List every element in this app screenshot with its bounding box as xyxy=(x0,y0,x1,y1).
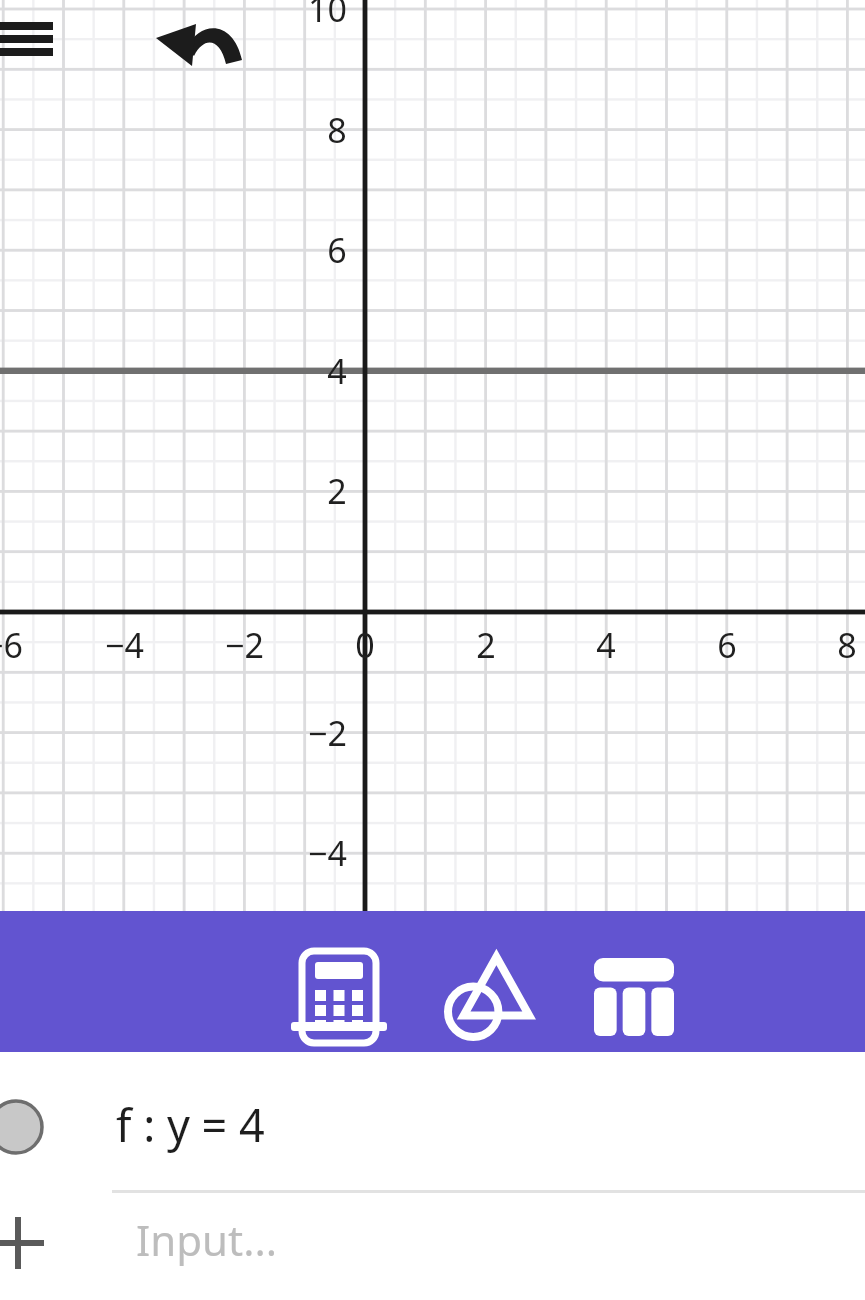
button[interactable]: Table xyxy=(554,911,700,1052)
staticText: Input... xyxy=(136,1211,277,1268)
staticText: −2 xyxy=(308,710,347,756)
staticText: f : y = 4 xyxy=(116,1094,265,1155)
button[interactable]: Tools xyxy=(408,911,554,1052)
staticText: 4 xyxy=(596,622,616,668)
staticText: −4 xyxy=(105,622,144,668)
staticText: 6 xyxy=(327,227,347,273)
staticText: 10 xyxy=(308,0,347,32)
staticText: 4 xyxy=(327,348,347,394)
button[interactable]: Undo xyxy=(150,4,246,74)
staticText: 2 xyxy=(476,622,496,668)
staticText: −4 xyxy=(308,830,347,876)
staticText: 0 xyxy=(355,622,375,668)
staticText: 2 xyxy=(327,468,347,514)
button[interactable]: Calculator xyxy=(266,911,412,1052)
staticText: 8 xyxy=(837,622,857,668)
button[interactable]: f : y = 4 xyxy=(0,1052,865,1187)
button[interactable]: Input... xyxy=(0,1193,865,1300)
staticText: 6 xyxy=(717,622,737,668)
button[interactable]: Menu xyxy=(0,8,60,66)
staticText: −6 xyxy=(0,622,23,668)
staticText: 8 xyxy=(327,107,347,153)
staticText: −2 xyxy=(225,622,264,668)
